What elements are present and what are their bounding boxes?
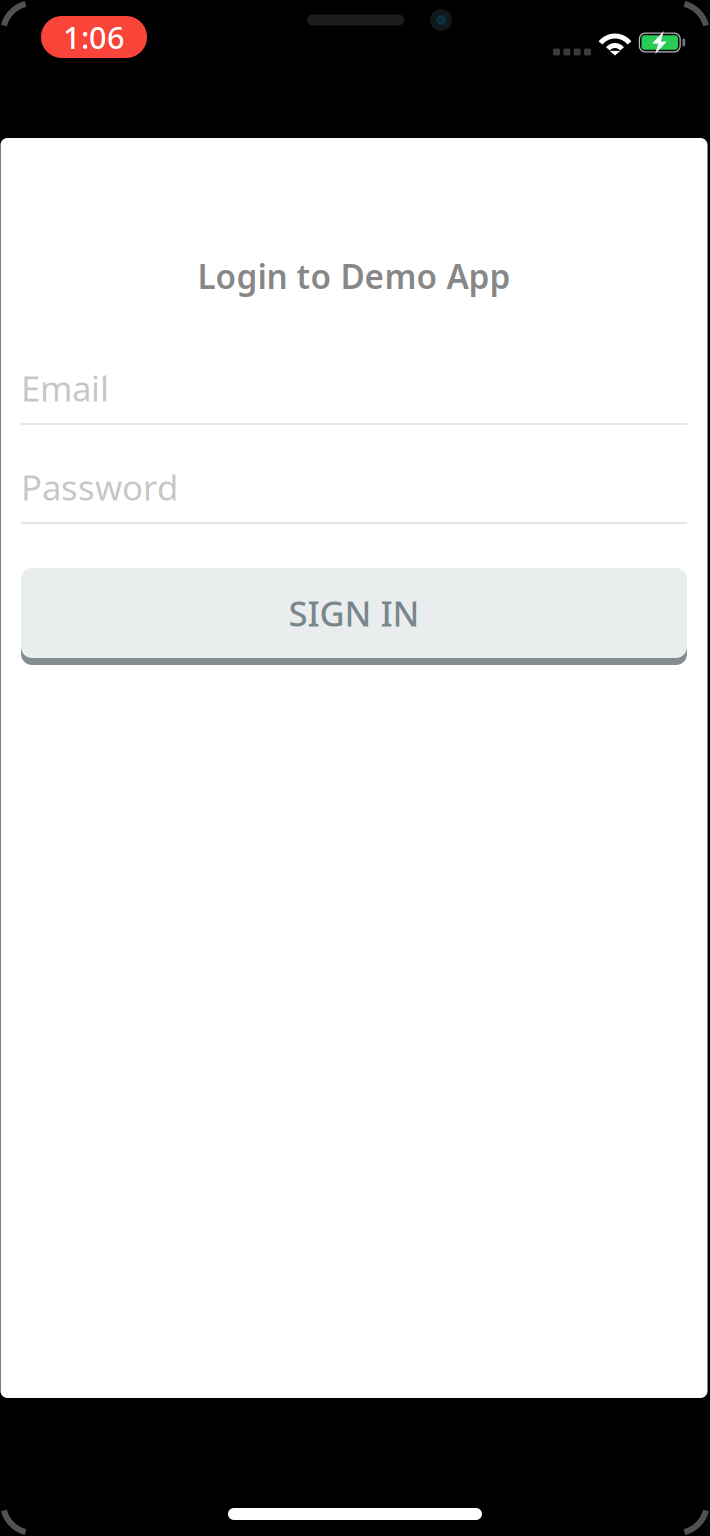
button[interactable]: SIGN IN <box>21 568 687 665</box>
staticText: 1:06 <box>63 17 125 57</box>
staticText: Login to Demo App <box>197 254 510 298</box>
staticText: SIGN IN <box>288 590 419 636</box>
button[interactable]: Password <box>21 469 687 524</box>
staticText: Password <box>21 464 178 510</box>
button[interactable]: Email <box>21 370 687 425</box>
staticText: Email <box>21 365 109 411</box>
